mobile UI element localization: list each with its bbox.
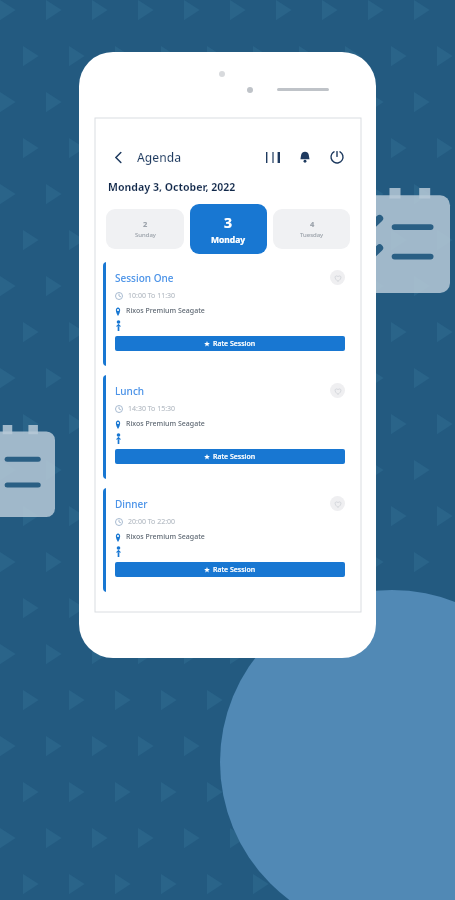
staticText: 10:00 To 11:30 [128, 291, 176, 301]
staticText: Rixos Premium Seagate [126, 306, 205, 316]
button[interactable]: 3 [190, 204, 267, 254]
staticText: 3 [224, 213, 233, 232]
button[interactable]: Lunch [103, 375, 353, 479]
button[interactable]: 4 [273, 209, 350, 249]
staticText: Tuesday [300, 231, 324, 239]
staticText: Monday [211, 234, 246, 246]
button[interactable]: Favourite [330, 270, 345, 285]
staticText: Rate Session [213, 339, 256, 349]
staticText: Session One [115, 271, 174, 285]
button[interactable]: Power / Logout [326, 146, 348, 168]
staticText: Monday 3, October, 2022 [108, 180, 236, 194]
staticText: Dinner [115, 497, 148, 511]
staticText: Rixos Premium Seagate [126, 419, 205, 429]
staticText: Rixos Premium Seagate [126, 532, 205, 542]
staticText: Lunch [115, 384, 145, 398]
button[interactable]: Session One [103, 262, 353, 366]
staticText: Rate Session [213, 452, 256, 462]
staticText: 20:00 To 22:00 [128, 517, 176, 527]
button[interactable]: Scan barcode [262, 146, 284, 168]
button[interactable]: Notifications [294, 146, 316, 168]
button[interactable]: 2 [106, 209, 184, 249]
button[interactable]: Back [108, 147, 128, 167]
staticText: 14:30 To 15:30 [128, 404, 176, 414]
staticText: 4 [310, 219, 315, 229]
button[interactable]: Favourite [330, 496, 345, 511]
button[interactable]: Rate Session [115, 336, 345, 351]
button[interactable]: Rate Session [115, 562, 345, 577]
staticText: Sunday [135, 231, 156, 239]
staticText: 2 [143, 219, 148, 229]
button[interactable]: Favourite [330, 383, 345, 398]
staticText: Rate Session [213, 565, 256, 575]
button[interactable]: Rate Session [115, 449, 345, 464]
staticText: Agenda [137, 149, 182, 165]
button[interactable]: Dinner [103, 488, 353, 592]
